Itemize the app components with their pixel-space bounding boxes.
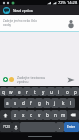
staticText: x — [22, 112, 25, 118]
staticText: p — [74, 89, 77, 95]
staticText: i — [58, 89, 60, 95]
button[interactable]: t — [31, 87, 39, 96]
staticText: d — [22, 100, 25, 106]
staticText: m — [61, 112, 66, 118]
staticText: a — [6, 100, 9, 106]
button[interactable]: x — [19, 110, 27, 120]
button[interactable]: i — [55, 87, 63, 96]
staticText: j — [54, 100, 56, 106]
button[interactable]: u — [47, 87, 55, 96]
button[interactable]: Add attachment — [3, 77, 8, 82]
button[interactable]: d — [19, 98, 27, 108]
button[interactable]: n — [51, 110, 59, 120]
button[interactable]: p — [71, 87, 79, 96]
button[interactable]: l — [67, 98, 75, 108]
button[interactable]: o — [63, 87, 71, 96]
button[interactable]: h — [43, 98, 51, 108]
staticText: t — [34, 89, 36, 95]
staticText: w — [9, 89, 13, 95]
staticText: y — [42, 89, 45, 95]
button[interactable]: q — [0, 87, 7, 96]
staticText: 72% 14:28 — [58, 0, 78, 5]
staticText: c — [30, 112, 33, 118]
staticText: r — [26, 89, 28, 95]
staticText: Zadejte jméno nebo číslo osoby — [3, 19, 37, 27]
staticText: f — [30, 100, 32, 106]
button[interactable]: b — [43, 110, 51, 120]
button[interactable]: Add contact — [65, 17, 77, 29]
staticText: q — [2, 89, 5, 95]
button[interactable]: Home — [28, 136, 52, 137]
button[interactable]: y — [39, 87, 47, 96]
button[interactable]: k — [59, 98, 67, 108]
staticText: l — [70, 100, 72, 106]
staticText: u — [50, 89, 53, 95]
staticText: b — [46, 112, 49, 118]
staticText: n — [54, 112, 57, 118]
staticText: Zadejte textovou zprávu — [17, 75, 46, 84]
button[interactable]: s — [11, 98, 19, 108]
button[interactable]: Backspace — [67, 110, 79, 120]
button[interactable]: w — [7, 87, 15, 96]
button[interactable]: Enter — [64, 122, 79, 132]
button[interactable]: c — [27, 110, 35, 120]
button[interactable]: Emoji — [9, 77, 14, 82]
staticText: k — [62, 100, 65, 106]
button[interactable]: g — [35, 98, 43, 108]
staticText: s — [14, 100, 17, 106]
button[interactable]: v — [35, 110, 43, 120]
staticText: Enter — [67, 125, 76, 129]
button[interactable]: Symbols — [0, 122, 12, 132]
staticText: v — [38, 112, 41, 118]
button[interactable]: r — [23, 87, 31, 96]
button[interactable]: e — [15, 87, 23, 96]
button[interactable]: Shift — [0, 110, 11, 120]
staticText: o — [66, 89, 69, 95]
staticText: . — [59, 124, 61, 130]
button[interactable]: Send — [65, 74, 77, 86]
staticText: z — [14, 112, 17, 118]
staticText: e — [18, 89, 21, 95]
staticText: h — [46, 100, 49, 106]
button[interactable]: m — [59, 110, 67, 120]
button[interactable]: Space — [20, 122, 56, 132]
button[interactable]: j — [51, 98, 59, 108]
staticText: ?123 — [3, 125, 10, 129]
button[interactable]: Voice input — [12, 122, 20, 132]
button[interactable]: a — [4, 98, 11, 108]
button[interactable]: f — [27, 98, 35, 108]
button[interactable]: z — [11, 110, 19, 120]
button[interactable]: . — [56, 122, 64, 132]
staticText: Nová zpráva — [13, 8, 33, 13]
staticText: g — [38, 100, 41, 106]
button[interactable]: Messages — [3, 7, 10, 14]
